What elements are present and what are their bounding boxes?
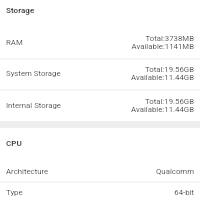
staticText: Storage	[6, 5, 35, 14]
staticText: CPU	[6, 138, 22, 147]
staticText: Internal Storage	[6, 101, 61, 110]
staticText: Total:19.56GB Available:11.44GB	[131, 65, 194, 82]
staticText: Qualcomm	[155, 167, 194, 176]
button[interactable]: Architecture	[0, 161, 200, 182]
staticText: Architecture	[6, 167, 49, 176]
button[interactable]: Internal Storage	[0, 90, 200, 121]
button[interactable]: RAM	[0, 27, 200, 58]
staticText: Total:3738MB Available:1141MB	[131, 34, 194, 51]
button[interactable]: System Storage	[0, 58, 200, 89]
button[interactable]: Type	[0, 183, 200, 200]
staticText: Type	[6, 188, 23, 197]
staticText: RAM	[6, 38, 23, 47]
staticText: System Storage	[6, 69, 61, 78]
staticText: 64-bit	[174, 188, 194, 197]
staticText: Total:19.56GB Available:11.44GB	[131, 97, 194, 114]
